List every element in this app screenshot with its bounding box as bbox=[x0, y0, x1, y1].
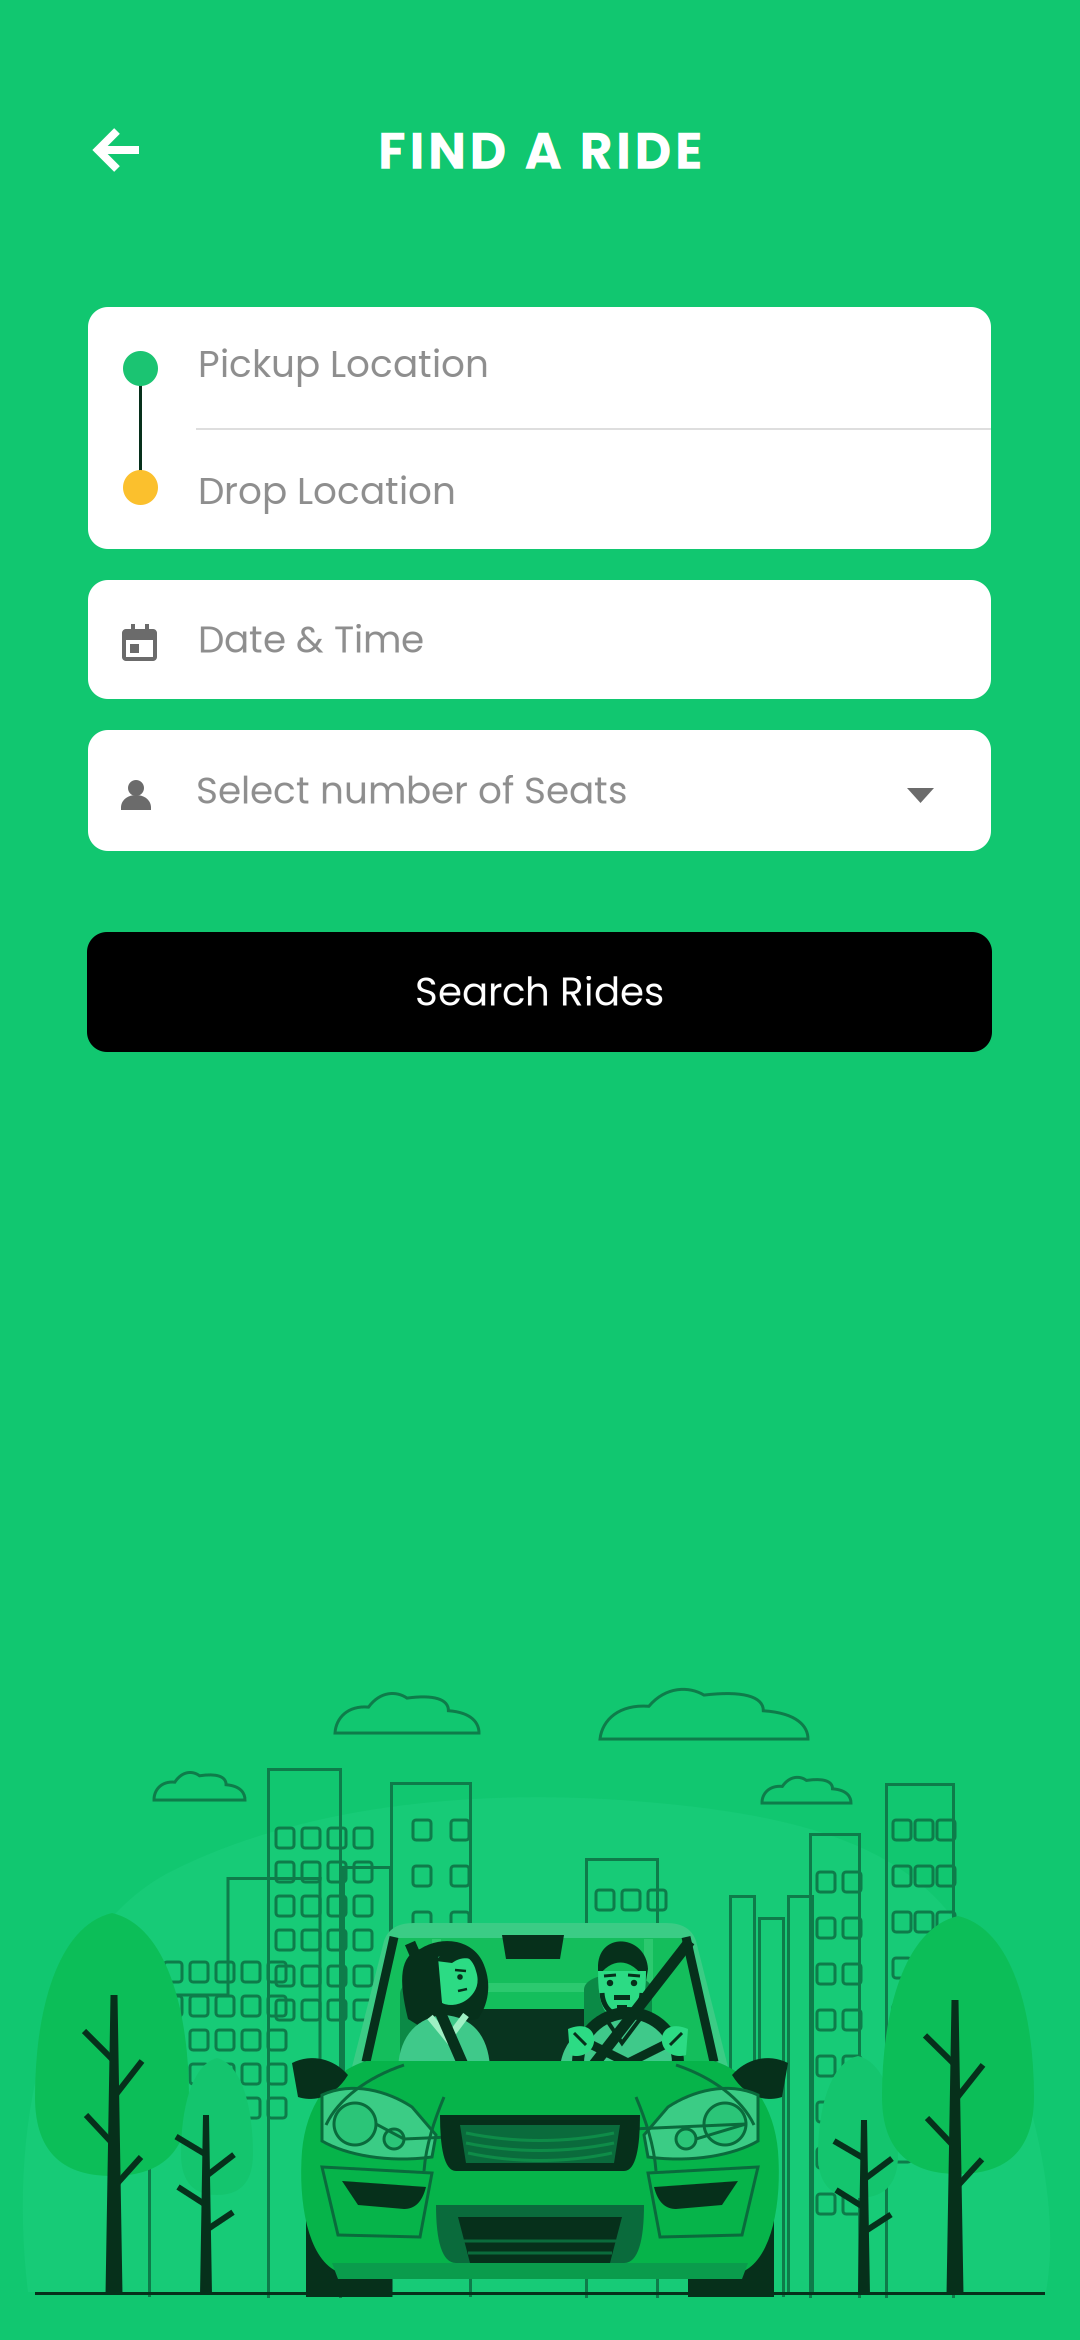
button[interactable]: Select number of Seats bbox=[88, 730, 991, 851]
staticText: Pickup Location bbox=[198, 338, 489, 390]
staticText: Date & Time bbox=[198, 613, 424, 666]
button[interactable]: Back bbox=[57, 95, 177, 205]
button[interactable]: Search Rides bbox=[87, 932, 992, 1052]
staticText: Select number of Seats bbox=[196, 764, 627, 817]
button[interactable]: Date & Time bbox=[88, 580, 991, 699]
button[interactable]: Drop Location bbox=[88, 429, 991, 549]
staticText: Drop Location bbox=[198, 465, 456, 517]
staticText: FIND A RIDE bbox=[378, 115, 702, 186]
button[interactable]: Pickup Location bbox=[88, 307, 991, 429]
staticText: Search Rides bbox=[415, 965, 664, 1019]
